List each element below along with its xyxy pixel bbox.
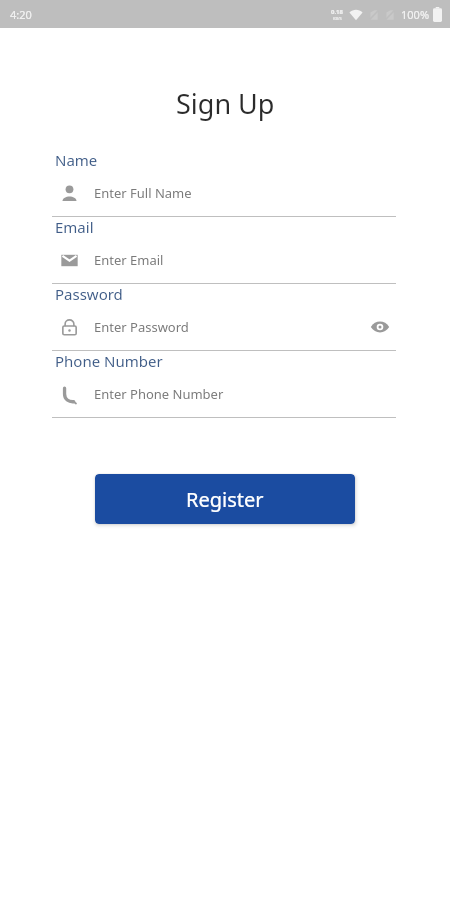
staticText: Enter Email bbox=[94, 251, 396, 269]
staticText: Name bbox=[55, 150, 98, 170]
staticText: KB/S bbox=[333, 16, 342, 21]
staticText: 100% bbox=[401, 7, 430, 22]
staticText: Sign Up bbox=[176, 85, 275, 122]
staticText: 0.18 bbox=[331, 8, 343, 16]
staticText: 4:20 bbox=[10, 7, 32, 22]
staticText: Enter Password bbox=[94, 318, 364, 336]
button[interactable]: Enter Password bbox=[52, 304, 396, 350]
button[interactable]: Enter Phone Number bbox=[52, 371, 396, 417]
staticText: Password bbox=[55, 284, 123, 304]
button[interactable]: Toggle password visibility bbox=[364, 311, 396, 343]
staticText: Email bbox=[55, 217, 94, 237]
button[interactable]: Register bbox=[95, 474, 355, 524]
staticText: Register bbox=[186, 486, 264, 513]
button[interactable]: Enter Full Name bbox=[52, 170, 396, 216]
staticText: Enter Full Name bbox=[94, 184, 396, 202]
staticText: Phone Number bbox=[55, 351, 163, 371]
button[interactable]: Enter Email bbox=[52, 237, 396, 283]
staticText: Enter Phone Number bbox=[94, 385, 396, 403]
